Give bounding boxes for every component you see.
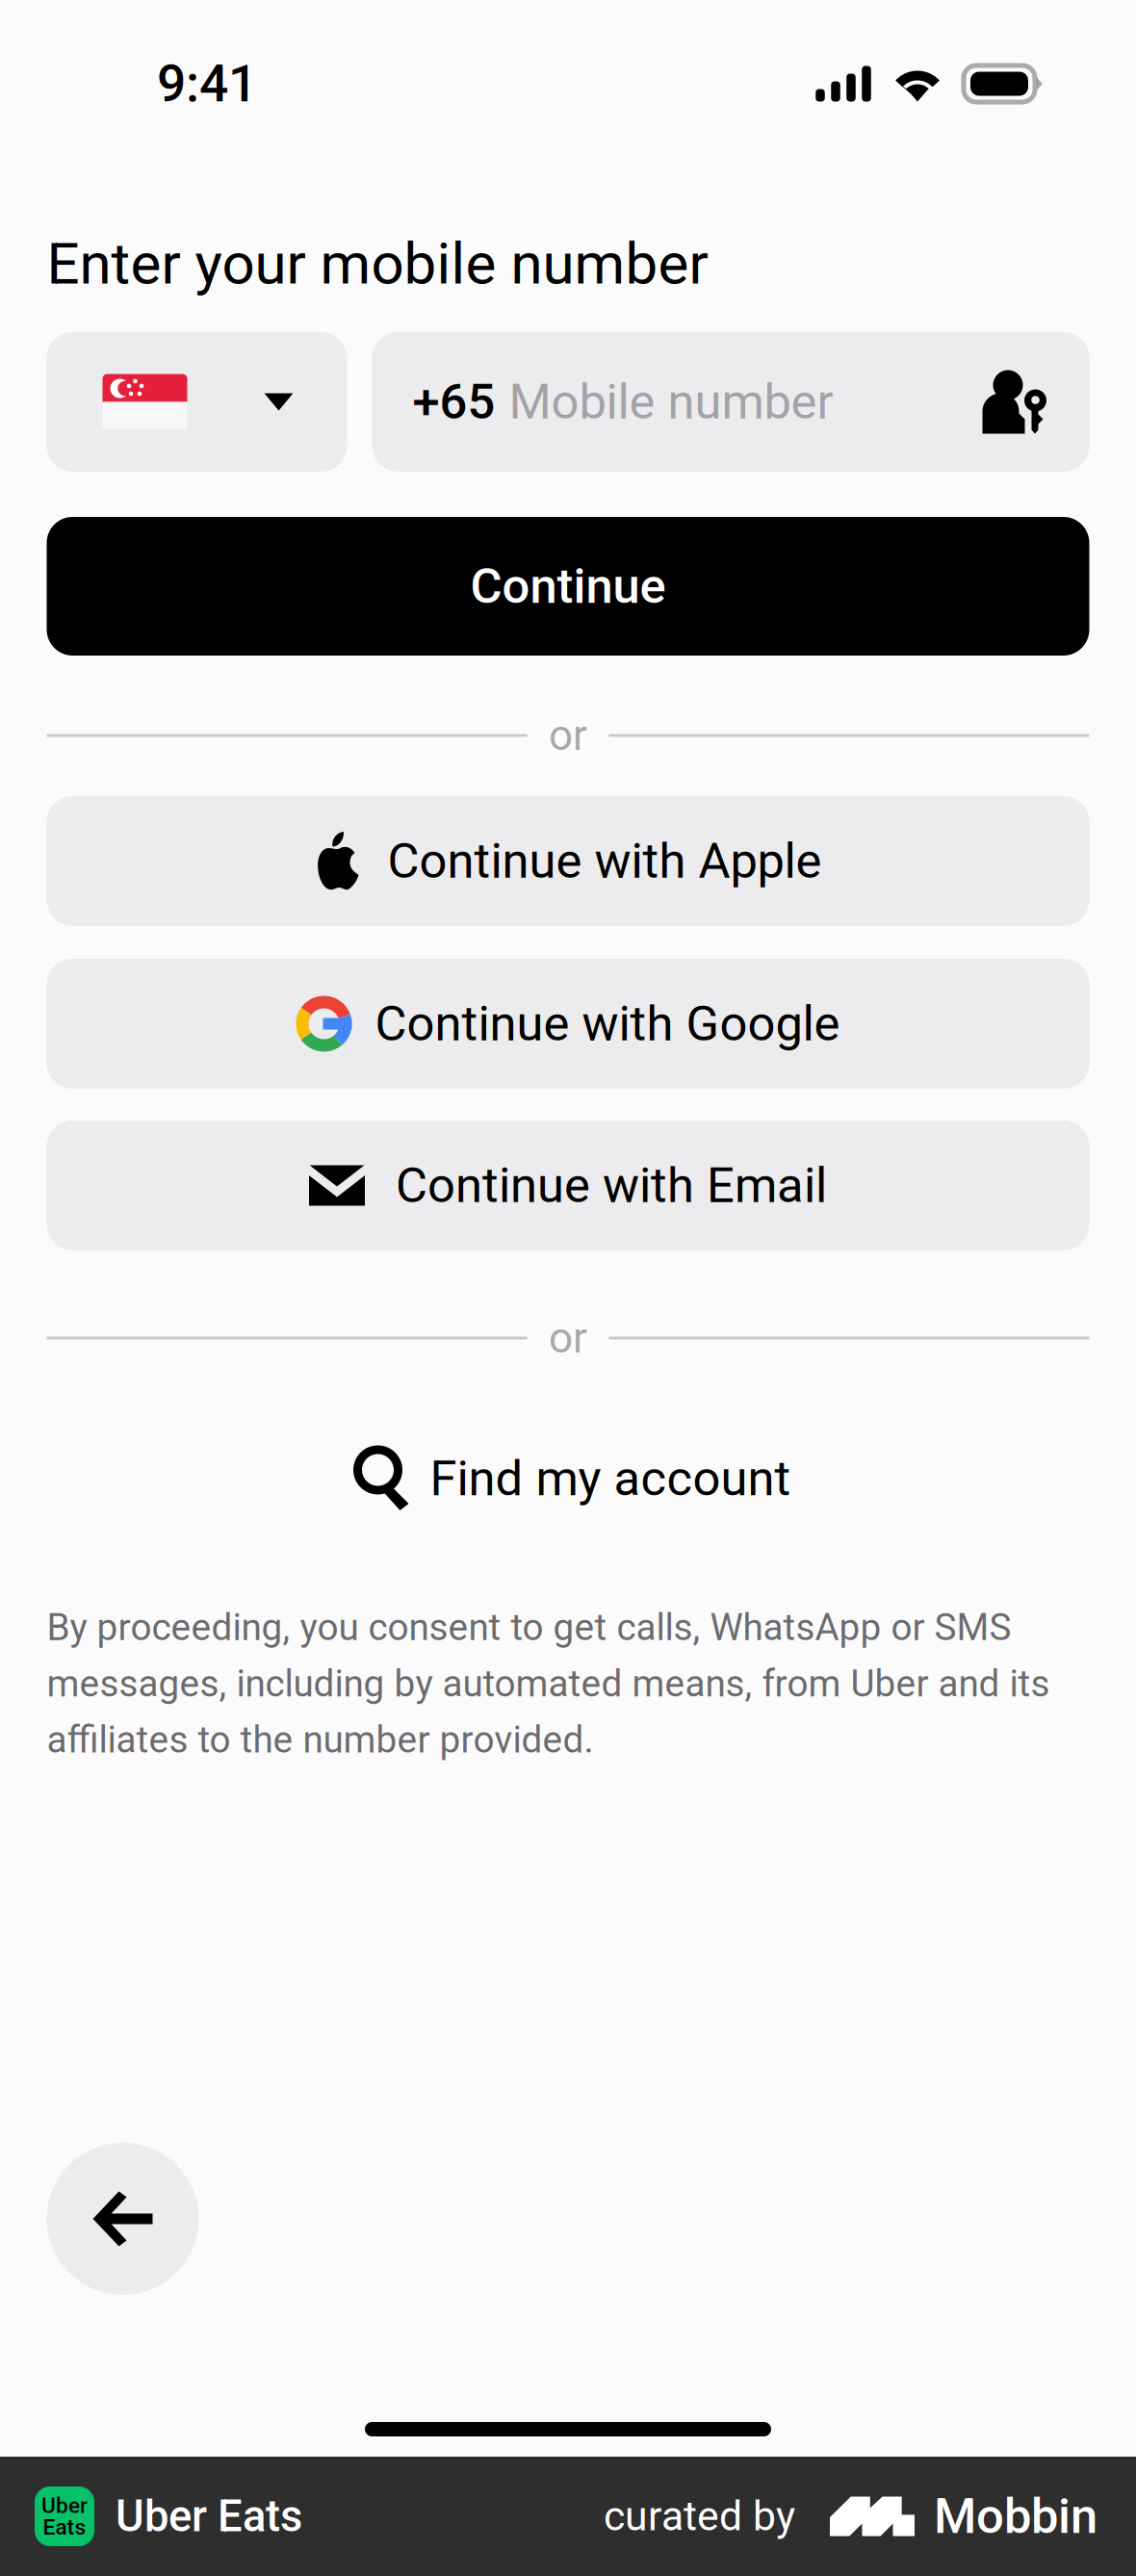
button[interactable]: Continue xyxy=(47,517,1089,656)
staticText: or xyxy=(549,711,587,760)
staticText: +65 xyxy=(413,373,495,430)
staticText: Mobile number xyxy=(509,373,833,430)
staticText: Uber Eats xyxy=(116,2491,302,2542)
staticText: Mobbin xyxy=(934,2488,1097,2545)
button[interactable]: Find my account xyxy=(47,1435,1089,1522)
staticText: By proceeding, you consent to get calls,… xyxy=(47,1606,1050,1762)
staticText: Continue with Google xyxy=(375,995,840,1052)
button[interactable]: Continue with Email xyxy=(47,1121,1089,1250)
staticText: Continue with Apple xyxy=(387,832,822,890)
staticText: Find my account xyxy=(430,1450,791,1507)
staticText: Enter your mobile number xyxy=(47,230,708,298)
button[interactable]: Continue with Apple xyxy=(47,796,1089,926)
button[interactable]: Select country xyxy=(47,332,347,472)
button[interactable]: +65 xyxy=(372,332,1089,472)
staticText: curated by xyxy=(604,2492,795,2540)
staticText: Continue xyxy=(470,558,666,615)
staticText: Uber xyxy=(41,2493,88,2518)
staticText: 9:41 xyxy=(157,54,257,114)
button[interactable]: Continue with Google xyxy=(47,959,1089,1089)
staticText: Eats xyxy=(43,2514,86,2540)
staticText: or xyxy=(549,1313,587,1363)
button[interactable]: Back xyxy=(47,2143,199,2295)
staticText: Continue with Email xyxy=(396,1157,827,1214)
